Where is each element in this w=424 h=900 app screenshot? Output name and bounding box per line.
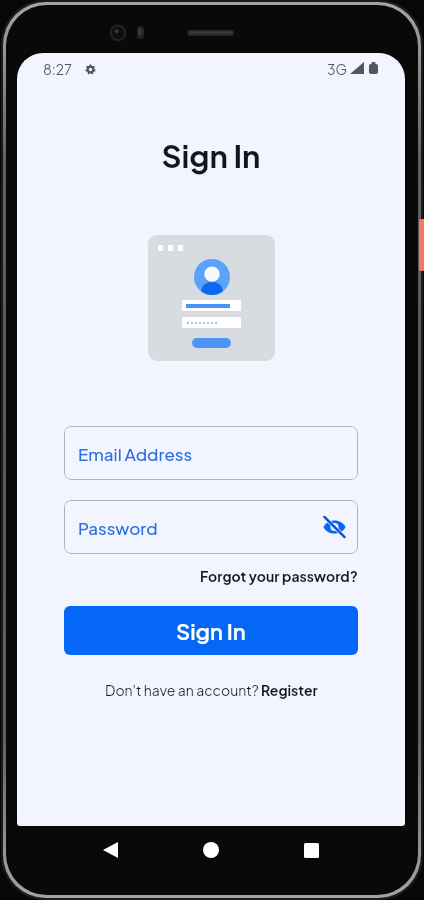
button[interactable]: Back — [86, 826, 134, 874]
staticText: Email Address — [78, 443, 193, 464]
button[interactable]: Show password — [321, 514, 347, 540]
button[interactable]: Sign In — [64, 606, 358, 655]
staticText: 8:27 — [43, 60, 72, 78]
button[interactable]: Email Address — [64, 426, 358, 480]
staticText: 3G — [327, 60, 348, 78]
button[interactable]: Forgot your password? — [200, 567, 358, 585]
staticText: Sign In — [176, 617, 246, 645]
staticText: Forgot your password? — [200, 567, 358, 585]
staticText: Password — [78, 517, 158, 538]
staticText: Don't have an account? Register — [105, 681, 318, 699]
button[interactable]: Recent apps — [287, 826, 335, 874]
button[interactable]: Password — [64, 500, 358, 554]
button[interactable]: Home — [187, 826, 235, 874]
button[interactable]: Don't have an account? Register — [105, 681, 318, 699]
staticText: Sign In — [161, 136, 261, 175]
